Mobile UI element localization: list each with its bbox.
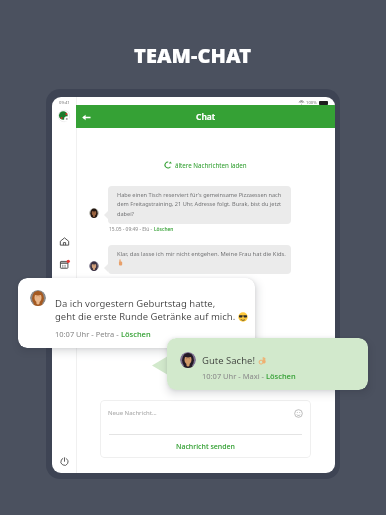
button[interactable]: Löschen: [121, 329, 151, 339]
staticText: Nachricht senden: [176, 442, 235, 452]
button[interactable]: Löschen: [154, 226, 174, 233]
staticText: ältere Nachrichten laden: [175, 161, 247, 169]
button[interactable]: Löschen: [266, 371, 296, 381]
button[interactable]: Logo: [58, 110, 70, 122]
staticText: 09:41: [59, 100, 70, 106]
button[interactable]: Gute Sache!: [167, 338, 368, 390]
staticText: TEAM-CHAT: [134, 42, 252, 66]
staticText: geht die erste Runde Getränke auf mich.: [55, 310, 238, 323]
staticText: Neue Nachricht...: [108, 409, 157, 417]
staticText: Gute Sache!: [202, 354, 258, 367]
staticText: Klar, das lasse ich mir nicht entgehen. …: [117, 250, 286, 258]
staticText: Chat: [196, 111, 216, 123]
button[interactable]: Habe einen Tisch reserviert für's gemein…: [108, 186, 291, 224]
button[interactable]: Emoji: [294, 409, 303, 418]
button[interactable]: Home: [59, 236, 70, 247]
staticText: 10:07 Uhr - Petra -: [55, 329, 121, 339]
button[interactable]: Log out: [59, 456, 70, 467]
staticText: 10:07 Uhr - Maxi -: [202, 371, 266, 381]
button[interactable]: Da ich vorgestern Geburtstag hatte,: [18, 278, 255, 348]
staticText: 15.05 - 09:49 - Elü -: [109, 226, 154, 233]
staticText: Habe einen Tisch reserviert für's gemein…: [117, 191, 282, 218]
staticText: 100%: [306, 100, 317, 106]
button[interactable]: Klar, das lasse ich mir nicht entgehen. …: [108, 245, 291, 274]
button[interactable]: ältere Nachrichten laden: [164, 161, 247, 169]
staticText: Da ich vorgestern Geburtstag hatte,: [55, 297, 216, 310]
button[interactable]: Calendar: [59, 259, 70, 270]
button[interactable]: Nachricht senden: [100, 438, 311, 456]
button[interactable]: Back: [78, 109, 94, 125]
